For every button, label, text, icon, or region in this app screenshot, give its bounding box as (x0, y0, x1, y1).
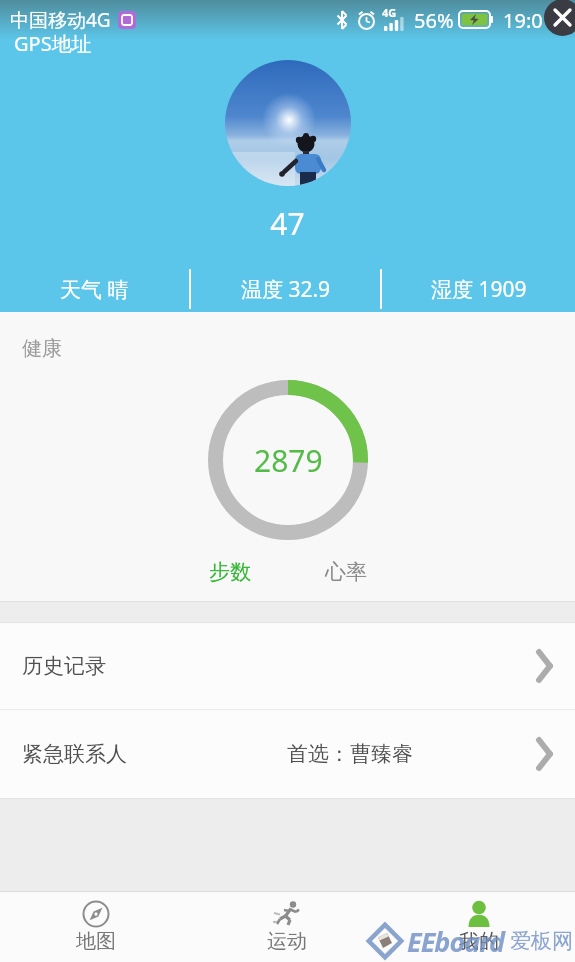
button[interactable]: 天气 晴 (0, 266, 189, 312)
button[interactable]: 紧急联系人 (0, 710, 575, 798)
staticText: 温度 32.9 (241, 275, 331, 304)
staticText: 紧急联系人 (22, 741, 127, 767)
staticText: 56% (414, 7, 454, 34)
button[interactable]: 我的 (383, 892, 575, 962)
staticText: 中国移动4G (10, 7, 111, 33)
staticText: 地图 (76, 929, 116, 954)
staticText: 历史记录 (22, 653, 106, 679)
button[interactable] (544, 0, 575, 36)
button[interactable] (225, 60, 351, 186)
staticText: GPS地址 (14, 30, 92, 57)
staticText: 2879 (254, 440, 323, 481)
staticText: 我的 (459, 929, 499, 954)
button[interactable]: 运动 (191, 892, 383, 962)
staticText: 首选：曹臻睿 (287, 741, 413, 767)
staticText: 19:0 (503, 7, 543, 34)
staticText: 47 (0, 203, 575, 244)
staticText: 天气 晴 (60, 275, 129, 304)
button[interactable]: 湿度 1909 (382, 266, 575, 312)
button[interactable]: 温度 32.9 (191, 266, 380, 312)
staticText: EEboard (407, 923, 505, 960)
staticText: 湿度 1909 (431, 275, 527, 304)
button[interactable]: 历史记录 (0, 623, 575, 709)
button[interactable]: 地图 (0, 892, 191, 962)
button[interactable]: 心率 (325, 559, 367, 585)
staticText: 运动 (267, 929, 307, 954)
button[interactable]: 步数 (209, 559, 251, 585)
staticText: 4G (382, 5, 397, 20)
staticText: 健康 (22, 336, 62, 361)
staticText: 爱板网 (510, 928, 573, 954)
